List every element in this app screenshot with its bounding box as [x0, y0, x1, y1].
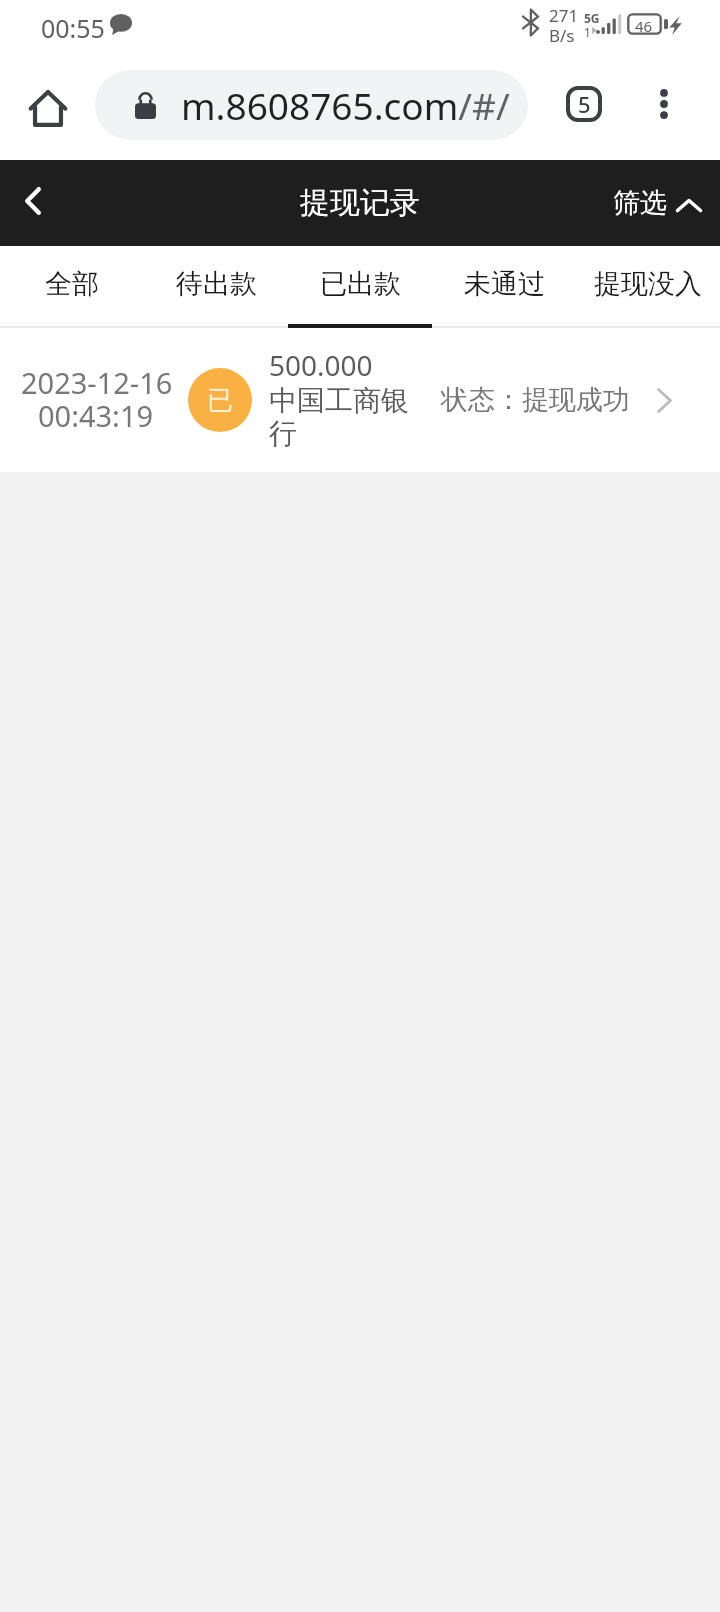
staticText: 2023-12-16	[21, 363, 171, 402]
staticText: 中国工商银行	[269, 383, 410, 451]
button[interactable]: Tabs, 5 open	[552, 72, 616, 136]
staticText: B/s	[549, 24, 575, 47]
button[interactable]: 2023-12-16	[0, 328, 720, 472]
button[interactable]: 已出款	[288, 246, 432, 328]
staticText: 00:55	[41, 11, 105, 45]
staticText: 未通过	[464, 267, 545, 301]
staticText: 提现没入	[594, 267, 702, 301]
staticText: 500.000	[269, 346, 373, 384]
button[interactable]: 筛选	[601, 178, 720, 228]
button[interactable]: Back	[3, 171, 63, 231]
staticText: 全部	[45, 267, 99, 301]
button[interactable]: 提现没入	[576, 246, 720, 328]
staticText: 5G	[584, 10, 600, 26]
staticText: 46	[635, 16, 653, 36]
button[interactable]: More options	[632, 72, 696, 136]
staticText: 1	[584, 24, 591, 40]
button[interactable]: Home	[14, 74, 82, 142]
staticText: 已出款	[320, 267, 401, 301]
staticText: 271	[549, 4, 579, 27]
staticText: 已	[207, 384, 233, 417]
staticText: 状态：提现成功	[441, 383, 630, 417]
button[interactable]: 未通过	[432, 246, 576, 328]
staticText: 待出款	[176, 267, 257, 301]
button[interactable]: 全部	[0, 246, 144, 328]
button[interactable]: m.8608765.com/#/	[95, 70, 528, 140]
staticText: m.8608765.com/#/	[181, 80, 510, 130]
button[interactable]: 待出款	[144, 246, 288, 328]
staticText: 筛选	[613, 186, 667, 220]
staticText: 5	[578, 89, 591, 119]
staticText: 提现记录	[300, 184, 420, 222]
staticText: 00:43:19	[38, 396, 154, 435]
